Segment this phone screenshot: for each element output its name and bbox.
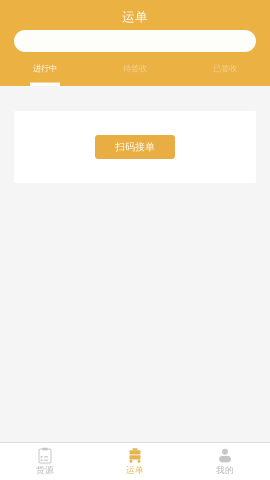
button[interactable]: 待签收: [90, 62, 180, 86]
button[interactable]: 货源: [0, 443, 90, 480]
staticText: 待签收: [123, 63, 147, 74]
staticText: 进行中: [33, 63, 57, 74]
staticText: 货源: [36, 464, 54, 475]
button[interactable]: 扫码接单: [95, 135, 175, 159]
staticText: 扫码接单: [115, 141, 155, 153]
button[interactable]: 已签收: [180, 62, 270, 86]
staticText: 运单: [126, 464, 144, 475]
button[interactable]: 我的: [180, 443, 270, 480]
button[interactable]: 运单: [90, 443, 180, 480]
staticText: 我的: [216, 464, 234, 475]
staticText: 已签收: [213, 63, 237, 74]
button[interactable]: [14, 30, 256, 52]
button[interactable]: 进行中: [0, 62, 90, 86]
staticText: 运单: [122, 9, 148, 25]
